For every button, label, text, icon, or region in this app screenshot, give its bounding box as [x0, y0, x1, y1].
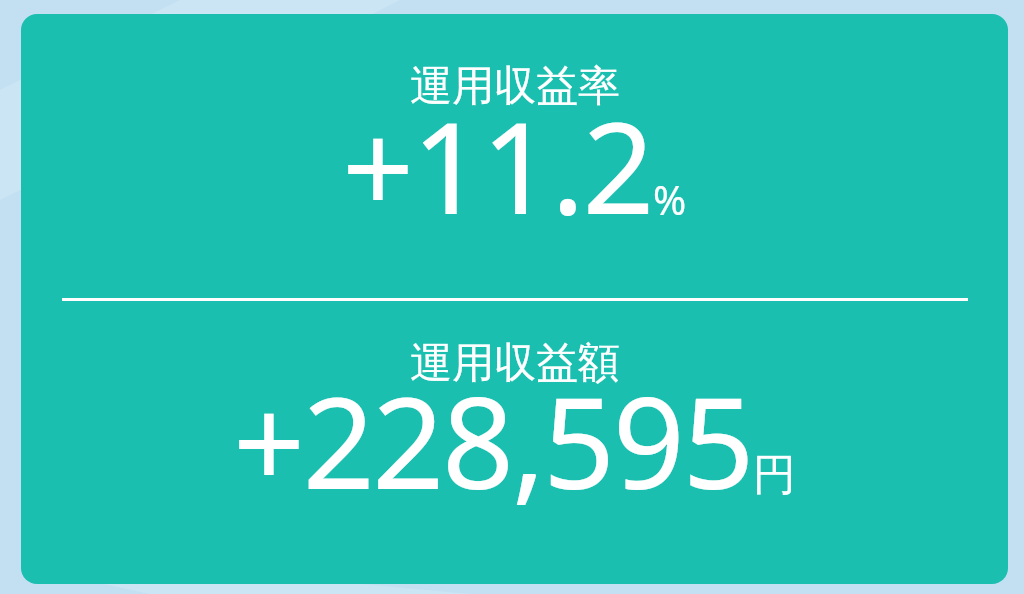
- staticText: +228,595: [233, 354, 753, 526]
- staticText: %: [653, 172, 687, 226]
- staticText: 運用収益額: [410, 337, 620, 390]
- button[interactable]: 運用収益率: [21, 14, 1008, 584]
- staticText: 円: [753, 448, 796, 502]
- staticText: +11.2: [342, 79, 653, 251]
- staticText: 運用収益率: [410, 60, 620, 113]
